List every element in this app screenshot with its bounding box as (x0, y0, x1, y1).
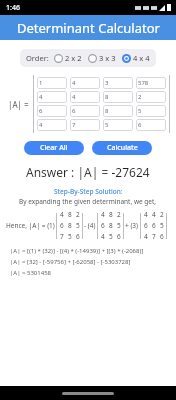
staticText: 4 (39, 93, 43, 101)
staticText: Calculate (107, 143, 138, 153)
staticText: 4 (101, 210, 105, 219)
button[interactable]: 2 (136, 91, 166, 103)
staticText: Order: (26, 53, 49, 63)
button[interactable]: 578 (136, 77, 166, 89)
staticText: 2 (138, 93, 142, 101)
staticText: 5 (76, 221, 80, 230)
button[interactable]: Step-By-Step Solution: (54, 187, 123, 196)
button[interactable]: 8 (103, 105, 133, 117)
button[interactable]: 6 (70, 105, 100, 117)
staticText: By expanding the given determinant, we g… (19, 197, 157, 206)
staticText: 6 (117, 232, 121, 241)
staticText: 7 (152, 232, 156, 241)
button[interactable]: 7 (70, 119, 100, 131)
staticText: 6 (160, 232, 164, 241)
button[interactable]: 1 (37, 77, 67, 89)
staticText: Clear All (40, 143, 68, 153)
staticText: |A| = [32] - [-59756] + [-62058] - [-530… (10, 258, 131, 266)
button[interactable]: 4 (37, 91, 67, 103)
staticText: 3 x 3 (99, 53, 116, 63)
staticText: 6 (101, 221, 105, 230)
button[interactable]: Clear All (24, 141, 84, 155)
staticText: 2 (160, 210, 164, 219)
staticText: 4 x 4 (133, 53, 150, 63)
staticText: 8 (109, 221, 113, 230)
staticText: 4 (72, 79, 76, 87)
staticText: 1:46 (6, 3, 20, 13)
staticText: 6 (60, 221, 64, 230)
staticText: 5 (160, 221, 164, 230)
staticText: 5 (105, 121, 109, 129)
staticText: Determinant Calculator (17, 19, 160, 37)
staticText: 7 (72, 121, 76, 129)
staticText: 8 (68, 210, 72, 219)
button[interactable]: 6 (37, 105, 67, 117)
staticText: 4 (144, 232, 148, 241)
staticText: 4 (101, 232, 105, 241)
staticText: 6 (144, 221, 148, 230)
staticText: 4 (39, 121, 43, 129)
staticText: 4 (72, 93, 76, 101)
button[interactable]: 8 (103, 91, 133, 103)
button[interactable]: Calculate (92, 141, 152, 155)
staticText: 4 (60, 210, 64, 219)
button[interactable]: 5 (103, 119, 133, 131)
staticText: 6 (76, 232, 80, 241)
staticText: + (3) (125, 221, 139, 230)
staticText: 3 (105, 79, 109, 87)
staticText: |A| = (8, 99, 29, 110)
staticText: 8 (105, 93, 109, 101)
button[interactable]: 5 (136, 105, 166, 117)
staticText: 6 (152, 221, 156, 230)
staticText: 6 (39, 107, 43, 115)
staticText: 1 (39, 79, 43, 87)
button[interactable]: 3 (103, 77, 133, 89)
button[interactable]: 4 (37, 119, 67, 131)
staticText: 8 (68, 221, 72, 230)
staticText: - (4) (84, 221, 96, 230)
button[interactable]: 6 (136, 119, 166, 131)
staticText: 2 x 2 (65, 53, 82, 63)
staticText: 2 (117, 210, 121, 219)
staticText: 7 (60, 232, 64, 241)
button[interactable]: 4 (70, 77, 100, 89)
staticText: 578 (138, 79, 149, 87)
button[interactable]: 4 x 4 (122, 53, 150, 63)
staticText: Answer : |A| = -27624 (26, 164, 150, 180)
staticText: |A| = 5301458 (10, 269, 52, 277)
button[interactable]: 3 x 3 (88, 53, 116, 63)
staticText: |A| = [(1) * (32)] - [(4) * (-14939)] + … (10, 247, 144, 255)
staticText: 5 (117, 221, 121, 230)
staticText: 5 (68, 232, 72, 241)
staticText: 2 (76, 210, 80, 219)
staticText: Hence, |A| = (1) (6, 221, 55, 230)
button[interactable]: 4 (70, 91, 100, 103)
staticText: 4 (152, 210, 156, 219)
staticText: 5 (109, 232, 113, 241)
staticText: 5 (138, 107, 142, 115)
staticText: 8 (109, 210, 113, 219)
staticText: 4 (144, 210, 148, 219)
staticText: 6 (138, 121, 142, 129)
staticText: 6 (72, 107, 76, 115)
staticText: 8 (105, 107, 109, 115)
button[interactable]: 2 x 2 (54, 53, 82, 63)
